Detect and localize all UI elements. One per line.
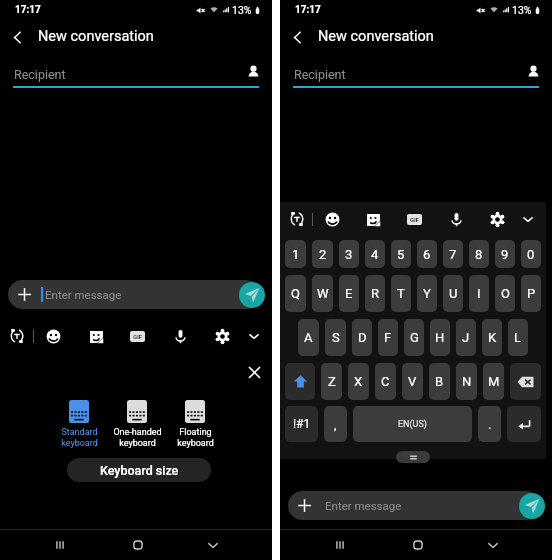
staticText: Standard [61, 427, 98, 438]
button[interactable]: Enter message [8, 280, 260, 309]
button[interactable]: W [312, 275, 333, 312]
button[interactable]: Keyboard settings [487, 209, 507, 229]
button[interactable]: Add contact [243, 61, 263, 81]
button[interactable]: 9 [495, 240, 515, 268]
button[interactable]: O [495, 275, 515, 312]
button[interactable]: 4 [365, 240, 385, 268]
button[interactable]: L [508, 319, 528, 356]
staticText: B [435, 374, 444, 389]
staticText: Recipient [294, 67, 346, 82]
button[interactable]: Home [402, 529, 434, 560]
button[interactable]: F [378, 319, 398, 356]
staticText: W [317, 286, 329, 301]
button[interactable]: Emoji [322, 209, 342, 229]
button[interactable]: H [430, 319, 450, 356]
button[interactable]: Close [243, 361, 265, 383]
button[interactable]: R [365, 275, 385, 312]
button[interactable]: T [391, 275, 411, 312]
staticText: 4 [371, 247, 379, 262]
button[interactable]: Enter [507, 406, 541, 442]
staticText: Q [291, 286, 300, 301]
staticText: L [514, 330, 522, 345]
button[interactable]: GIF [127, 326, 147, 346]
button[interactable]: P [521, 275, 541, 312]
button[interactable]: Q [285, 275, 306, 312]
button[interactable]: X [348, 363, 369, 400]
staticText: 3 [345, 247, 353, 262]
button[interactable]: Enter message [288, 491, 540, 520]
button[interactable]: Standard [51, 400, 107, 456]
staticText: , [334, 417, 337, 432]
button[interactable]: Collapse [244, 326, 264, 346]
button[interactable]: S [325, 319, 346, 356]
staticText: E [345, 286, 353, 301]
button[interactable]: 0 [521, 240, 541, 268]
button[interactable]: Stickers [86, 326, 106, 346]
button[interactable]: Z [321, 363, 342, 400]
button[interactable]: Collapse [518, 209, 538, 229]
button[interactable]: Send [239, 282, 265, 308]
button[interactable]: Back [287, 27, 308, 48]
staticText: One-handed [113, 427, 162, 438]
staticText: Z [328, 374, 336, 389]
button[interactable]: Backspace [510, 363, 541, 400]
button[interactable]: Emoji [43, 326, 63, 346]
button[interactable]: E [339, 275, 359, 312]
button[interactable]: Y [417, 275, 437, 312]
button[interactable]: Floating [167, 400, 223, 456]
staticText: 17:17 [295, 4, 321, 16]
button[interactable]: One-handed [109, 400, 165, 456]
button[interactable]: I [469, 275, 489, 312]
button[interactable]: Resize keyboard [396, 451, 430, 463]
button[interactable]: GIF [404, 209, 424, 229]
staticText: R [371, 286, 380, 301]
button[interactable]: V [402, 363, 423, 400]
button[interactable]: 3 [339, 240, 359, 268]
button[interactable]: C [375, 363, 396, 400]
button[interactable]: G [404, 319, 424, 356]
button[interactable]: Recents [324, 529, 356, 560]
button[interactable]: M [483, 363, 504, 400]
button[interactable]: Recents [44, 529, 76, 560]
button[interactable]: Shift [285, 363, 315, 400]
button[interactable]: N [456, 363, 477, 400]
button[interactable]: U [443, 275, 463, 312]
button[interactable]: Back [477, 529, 509, 560]
button[interactable]: B [429, 363, 450, 400]
button[interactable]: , [324, 406, 347, 442]
button[interactable]: Voice input [446, 209, 466, 229]
button[interactable]: Voice input [170, 326, 190, 346]
button[interactable]: . [478, 406, 501, 442]
button[interactable]: Send [519, 493, 545, 519]
staticText: keyboard [119, 438, 156, 449]
button[interactable]: Back [197, 529, 229, 560]
button[interactable]: K [482, 319, 502, 356]
staticText: U [449, 286, 458, 301]
staticText: S [332, 330, 340, 345]
button[interactable]: Keyboard settings [212, 326, 232, 346]
staticText: H [435, 330, 445, 345]
button[interactable]: 7 [443, 240, 463, 268]
button[interactable]: A [298, 319, 319, 356]
button[interactable]: Add contact [523, 61, 543, 81]
staticText: G [410, 330, 419, 345]
button[interactable]: Translate [7, 326, 27, 346]
button[interactable]: Translate [287, 209, 307, 229]
button[interactable]: 5 [391, 240, 411, 268]
button[interactable]: 2 [312, 240, 333, 268]
button[interactable]: D [352, 319, 372, 356]
staticText: 13% [512, 4, 532, 16]
button[interactable]: !#1 [285, 406, 318, 442]
button[interactable]: EN(US) [353, 406, 472, 442]
button[interactable]: 6 [417, 240, 437, 268]
staticText: GIF [410, 216, 420, 223]
staticText: Enter message [45, 288, 122, 301]
button[interactable]: Stickers [363, 209, 383, 229]
button[interactable]: Home [122, 529, 154, 560]
button[interactable]: 1 [285, 240, 306, 268]
button[interactable]: Back [7, 27, 28, 48]
button[interactable]: Keyboard size [67, 458, 211, 482]
button[interactable]: J [456, 319, 476, 356]
staticText: I [477, 286, 481, 301]
button[interactable]: 8 [469, 240, 489, 268]
